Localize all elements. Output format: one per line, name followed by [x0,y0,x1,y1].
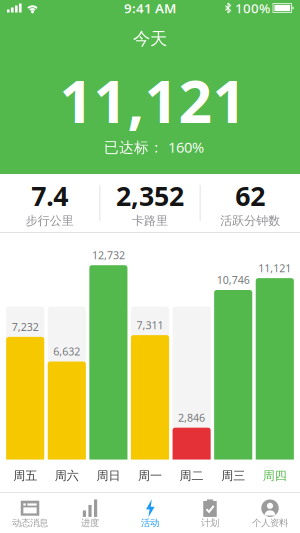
staticText: 周四 [263,468,287,483]
button[interactable]: 动态消息 [0,499,60,529]
staticText: 2,846 [178,410,205,425]
staticText: 个人资料 [252,517,288,529]
staticText: 62 [235,178,265,213]
staticText: 7,311 [136,318,163,332]
staticText: 卡路里 [132,213,168,228]
staticText: 动态消息 [12,517,48,529]
staticText: 今天 [133,28,167,49]
staticText: 11,121 [258,261,291,275]
staticText: 周五 [13,468,37,483]
button[interactable]: 个人资料 [240,499,300,529]
staticText: 进度 [81,517,99,529]
staticText: 活跃分钟数 [220,213,280,228]
button[interactable]: 活动 [120,499,180,529]
staticText: 100% [235,0,270,17]
staticText: 6,632 [53,344,80,358]
staticText: 步行公里 [26,213,74,228]
staticText: 12,732 [92,248,125,262]
staticText: 周一 [138,468,162,483]
staticText: 2,352 [116,178,184,213]
staticText: 11,121 [59,61,246,139]
button[interactable]: 进度 [60,499,120,529]
staticText: 已达标： 160% [104,137,204,157]
staticText: 10,746 [217,273,250,287]
button[interactable]: 计划 [180,499,240,529]
staticText: 周六 [55,468,79,483]
staticText: 周三 [221,468,245,483]
staticText: 周二 [180,468,204,483]
staticText: 周日 [96,468,120,483]
staticText: 活动 [141,517,159,529]
staticText: 7,232 [12,320,39,334]
staticText: 9:41 AM [124,0,176,17]
staticText: 7.4 [31,178,68,213]
staticText: 计划 [201,517,219,529]
